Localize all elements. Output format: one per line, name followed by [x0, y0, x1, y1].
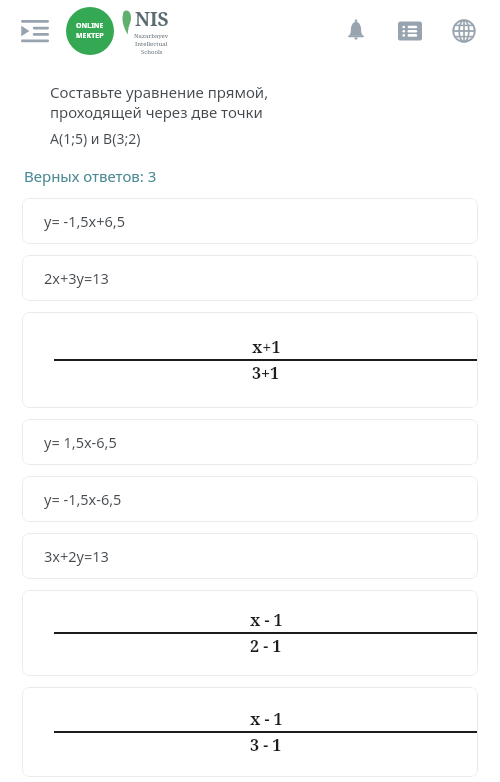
button[interactable]: Online Mektep — [66, 7, 114, 55]
button[interactable]: x - 1 — [22, 590, 478, 676]
staticText: y= -1,5x+6,5 — [44, 211, 126, 231]
staticText: MEKTEP — [76, 31, 104, 41]
staticText: Nazarbayev — [134, 32, 169, 40]
button[interactable]: y= 1,5x-6,5 — [22, 419, 478, 465]
staticText: Верных ответов: 3 — [24, 166, 157, 186]
button[interactable]: x - 1 — [22, 687, 478, 777]
staticText: NIS — [135, 6, 169, 32]
staticText: x - 1 — [250, 708, 283, 730]
button[interactable]: 2x+3y=13 — [22, 255, 478, 301]
staticText: 2 - 1 — [250, 635, 282, 657]
button[interactable]: Menu — [18, 14, 52, 48]
staticText: x+1 — [252, 336, 281, 358]
button[interactable]: Notifications — [338, 13, 374, 49]
staticText: 3 - 1 — [250, 734, 282, 756]
staticText: x - 1 — [250, 609, 283, 631]
staticText: 3x+2y=13 — [44, 546, 109, 566]
staticText: y= 1,5x-6,5 — [44, 432, 117, 452]
button[interactable]: x+1 — [22, 312, 478, 408]
staticText: 3+1 — [252, 362, 280, 384]
staticText: 2x+3y=13 — [44, 268, 109, 288]
button[interactable]: NIS — [120, 6, 169, 56]
staticText: A(1;5) и B(3;2) — [50, 129, 141, 148]
button[interactable]: y= -1,5x-6,5 — [22, 476, 478, 522]
button[interactable]: Tasks — [392, 13, 428, 49]
staticText: Schools — [141, 48, 163, 56]
staticText: Составьте уравнение прямой, — [50, 82, 269, 102]
button[interactable]: 3x+2y=13 — [22, 533, 478, 579]
staticText: проходящей через две точки — [50, 102, 263, 122]
button[interactable]: y= -1,5x+6,5 — [22, 198, 478, 244]
button[interactable]: Language — [446, 13, 482, 49]
staticText: y= -1,5x-6,5 — [44, 489, 122, 509]
staticText: ONLINE — [76, 21, 104, 31]
staticText: Intellectual — [135, 40, 168, 48]
